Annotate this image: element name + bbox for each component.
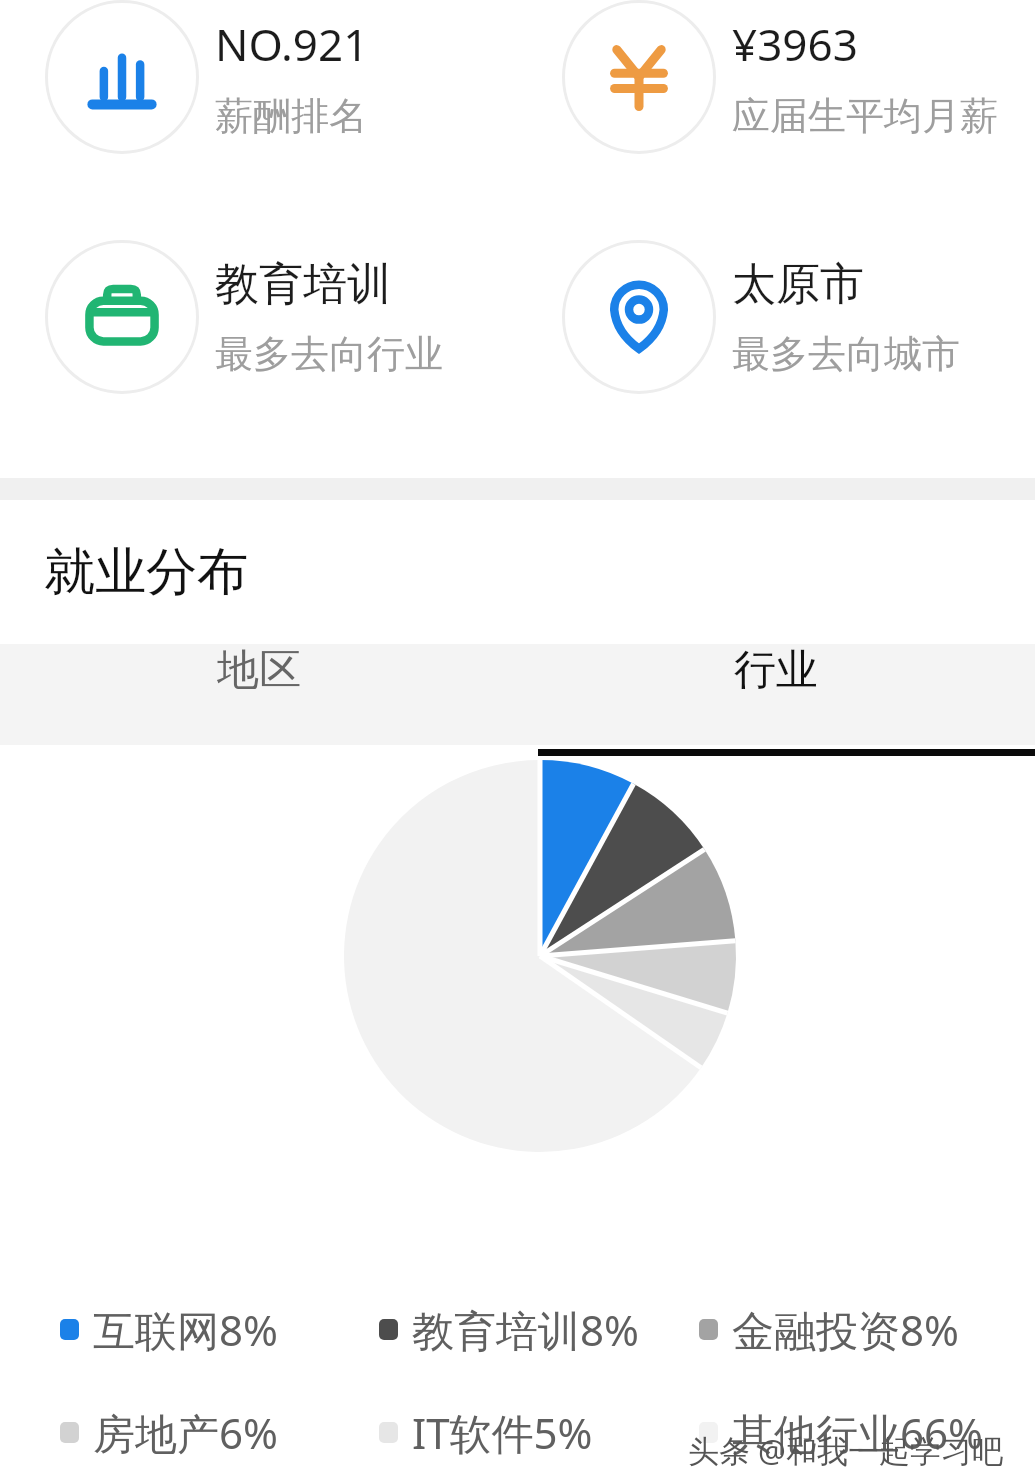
staticText: 房地产6% — [93, 1404, 278, 1461]
staticText: 互联网8% — [93, 1301, 278, 1358]
staticText: 最多去向行业 — [215, 330, 443, 378]
button[interactable]: 金融投资8% — [699, 1301, 1035, 1358]
button[interactable]: NO.921 — [0, 0, 517, 154]
button[interactable]: 教育培训 — [0, 240, 517, 394]
button[interactable]: ¥3963 — [517, 0, 1035, 154]
button[interactable]: 行业 — [517, 644, 1035, 697]
button[interactable]: IT软件5% — [379, 1404, 699, 1461]
staticText: 金融投资8% — [732, 1301, 959, 1358]
staticText: 行业 — [734, 644, 818, 697]
staticText: 太原市 — [732, 257, 864, 312]
staticText: 教育培训8% — [412, 1301, 639, 1358]
staticText: NO.921 — [215, 14, 369, 74]
staticText: 薪酬排名 — [215, 92, 367, 140]
button[interactable]: 太原市 — [517, 240, 1035, 394]
button[interactable]: 地区 — [0, 644, 517, 697]
staticText: IT软件5% — [412, 1404, 593, 1461]
staticText: 最多去向城市 — [732, 330, 960, 378]
button[interactable]: 房地产6% — [60, 1404, 379, 1461]
staticText: ¥3963 — [732, 14, 858, 74]
staticText: 就业分布 — [44, 540, 248, 604]
staticText: 头条 @和我一起学习吧 — [688, 1429, 1003, 1471]
button[interactable]: 教育培训8% — [379, 1301, 699, 1358]
staticText: 教育培训 — [215, 257, 391, 312]
staticText: 应届生平均月薪 — [732, 92, 998, 140]
staticText: 地区 — [217, 644, 301, 697]
button[interactable]: 其他行业66% — [699, 1404, 1035, 1461]
staticText: 其他行业66% — [732, 1404, 983, 1461]
button[interactable]: 互联网8% — [60, 1301, 379, 1358]
